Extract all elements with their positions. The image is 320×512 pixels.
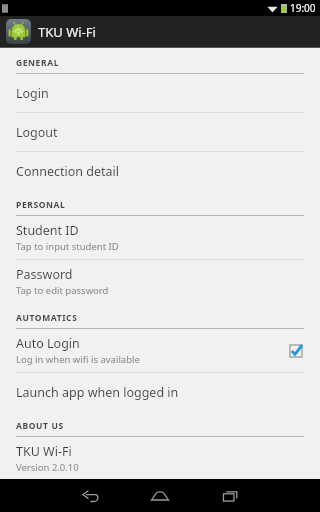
button[interactable]: Login	[0, 74, 320, 112]
button[interactable]: Back	[55, 479, 125, 512]
staticText: TKU Wi-Fi	[38, 23, 96, 41]
staticText: Password	[16, 266, 73, 283]
other: Auto Login checkbox	[288, 343, 304, 359]
button[interactable]: Launch app when logged in	[0, 373, 320, 411]
staticText: TKU Wi-Fi	[16, 443, 72, 460]
staticText: AUTOMATICS	[16, 312, 78, 324]
staticText: Connection detail	[16, 163, 119, 180]
staticText: Tap to input student ID	[16, 240, 119, 253]
staticText: Launch app when logged in	[16, 384, 179, 401]
staticText: Login	[16, 85, 49, 102]
staticText: Student ID	[16, 222, 79, 239]
button[interactable]: Password	[0, 260, 320, 303]
button[interactable]: TKU Wi-Fi	[0, 437, 320, 479]
staticText: Tap to edit password	[16, 284, 109, 297]
button[interactable]: Home	[125, 479, 195, 512]
button[interactable]: Auto Login	[0, 329, 320, 372]
staticText: Version 2.0.10	[16, 461, 79, 474]
staticText: ABOUT US	[16, 420, 64, 432]
button[interactable]: Recent apps	[195, 479, 265, 512]
button[interactable]: Connection detail	[0, 152, 320, 190]
staticText: GENERAL	[16, 57, 59, 69]
staticText: Logout	[16, 124, 58, 141]
button[interactable]: Student ID	[0, 216, 320, 259]
staticText: PERSONAL	[16, 199, 66, 211]
staticText: Auto Login	[16, 335, 80, 352]
staticText: 19:00	[290, 1, 316, 15]
button[interactable]: Logout	[0, 113, 320, 151]
staticText: Log in when wifi is available	[16, 353, 140, 366]
